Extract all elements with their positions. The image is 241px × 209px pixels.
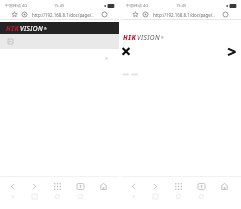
button[interactable]: Tabs	[48, 179, 66, 193]
button[interactable]: Close	[120, 45, 132, 57]
button[interactable]: System button 3	[193, 191, 209, 201]
staticText: VISION	[20, 24, 44, 33]
staticText: HIK	[6, 24, 20, 33]
button[interactable]: System button 1	[26, 191, 42, 201]
button[interactable]: Back	[124, 179, 142, 193]
button[interactable]: Forward	[146, 179, 164, 193]
button[interactable]: Tabs	[169, 179, 187, 193]
staticText: http://192.168.8.1/doc/page/..	[153, 12, 215, 18]
staticText: http://192.168.8.1/doc/page/..	[32, 12, 94, 18]
button[interactable]: Reload	[101, 11, 108, 18]
button[interactable]: Back	[3, 179, 21, 193]
button[interactable]: Site information	[142, 11, 149, 18]
staticText: 中国移动 4G	[5, 3, 28, 8]
staticText: ®	[44, 27, 47, 31]
button[interactable]: Next	[225, 45, 237, 57]
button[interactable]: http://192.168.8.1/doc/page/..	[150, 10, 220, 20]
button[interactable]: System button 2	[170, 191, 186, 201]
staticText: VISION	[137, 33, 161, 42]
button[interactable]: http://192.168.8.1/doc/page/..	[29, 10, 99, 20]
button[interactable]: Site information	[21, 11, 28, 18]
button[interactable]: Forward	[25, 179, 43, 193]
button[interactable]: Bookmarks	[192, 179, 210, 193]
button[interactable]: Home	[215, 179, 233, 193]
button[interactable]: System button 3	[72, 191, 88, 201]
button[interactable]: Reload	[222, 11, 229, 18]
staticText: ®	[161, 36, 164, 40]
button[interactable]: Bookmark	[11, 11, 18, 18]
staticText: 中国移动 4G	[126, 3, 149, 8]
button[interactable]: Home	[94, 179, 112, 193]
button[interactable]: Bookmarks	[71, 179, 89, 193]
button[interactable]: System button 1	[147, 191, 163, 201]
button[interactable]: System button 2	[49, 191, 65, 201]
staticText: HIK	[123, 33, 137, 42]
button[interactable]: Bookmark	[132, 11, 139, 18]
staticText: 15:45	[54, 3, 65, 8]
staticText: 15:45	[176, 3, 187, 8]
